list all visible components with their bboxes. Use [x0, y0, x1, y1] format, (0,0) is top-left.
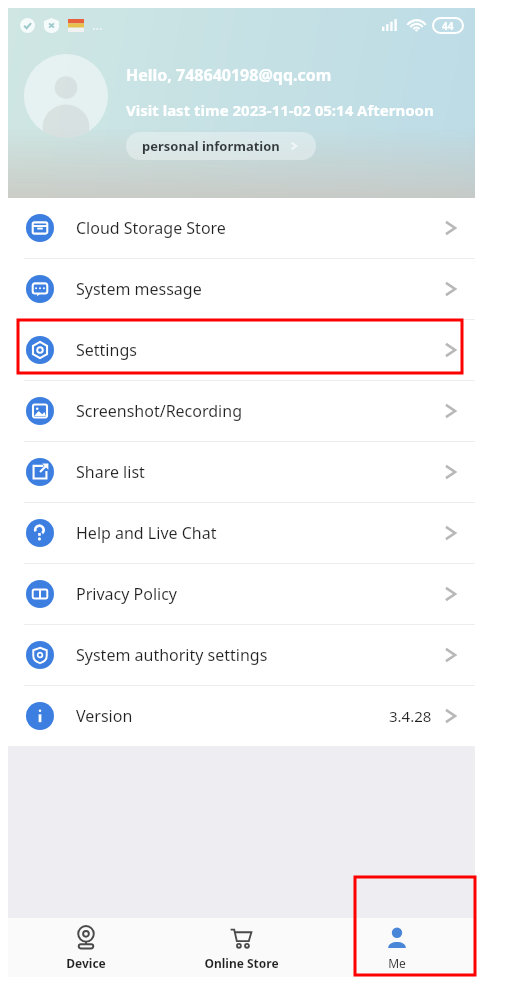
- staticText: Privacy Policy: [76, 583, 177, 605]
- staticText: Share list: [76, 461, 145, 483]
- staticText: Visit last time 2023-11-02 05:14 Afterno…: [126, 100, 434, 120]
- button[interactable]: Device: [8, 918, 163, 977]
- staticText: Online Store: [204, 955, 279, 971]
- staticText: Device: [66, 955, 106, 971]
- button[interactable]: Me: [319, 918, 475, 977]
- button[interactable]: Privacy Policy: [8, 564, 475, 624]
- button[interactable]: Help and Live Chat: [8, 503, 475, 563]
- staticText: Screenshot/Recording: [76, 400, 242, 422]
- button[interactable]: Version: [8, 686, 475, 746]
- staticText: Me: [388, 955, 406, 971]
- staticText: System authority settings: [76, 644, 268, 666]
- staticText: 44: [442, 19, 454, 33]
- staticText: Cloud Storage Store: [76, 217, 226, 239]
- staticText: System message: [76, 278, 202, 300]
- button[interactable]: Screenshot/Recording: [8, 381, 475, 441]
- staticText: Version: [76, 705, 133, 727]
- button[interactable]: Settings: [8, 320, 475, 380]
- button[interactable]: Cloud Storage Store: [8, 198, 475, 258]
- staticText: 3.4.28: [389, 706, 432, 726]
- button[interactable]: Share list: [8, 442, 475, 502]
- staticText: personal information: [142, 137, 280, 155]
- staticText: Help and Live Chat: [76, 522, 217, 544]
- staticText: Settings: [76, 339, 137, 361]
- button[interactable]: Online Store: [163, 918, 319, 977]
- button[interactable]: System authority settings: [8, 625, 475, 685]
- staticText: ...: [92, 16, 103, 34]
- button[interactable]: personal information: [126, 132, 316, 160]
- button[interactable]: System message: [8, 259, 475, 319]
- staticText: Hello, 748640198@qq.com: [126, 64, 332, 86]
